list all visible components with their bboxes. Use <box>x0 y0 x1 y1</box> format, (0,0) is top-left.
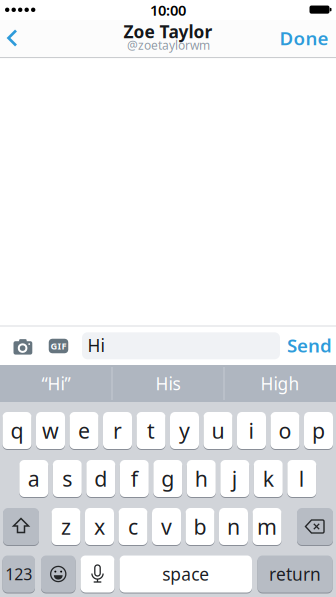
staticText: p <box>312 416 325 445</box>
staticText: 123 <box>5 563 32 585</box>
staticText: t <box>147 416 155 445</box>
staticText: Zoe Taylor <box>123 20 212 43</box>
button[interactable] <box>8 335 38 359</box>
staticText: n <box>227 512 240 541</box>
staticText: return <box>269 562 321 585</box>
button[interactable]: u <box>203 412 232 449</box>
button[interactable]: t <box>136 412 165 449</box>
button[interactable]: j <box>220 460 249 497</box>
button[interactable]: y <box>170 412 199 449</box>
button[interactable]: k <box>254 460 283 497</box>
button[interactable]: a <box>19 460 48 497</box>
staticText: 10:00 <box>150 0 186 20</box>
staticText: z <box>61 512 71 541</box>
button[interactable] <box>82 332 280 359</box>
button[interactable]: Done <box>276 20 332 56</box>
staticText: e <box>78 416 90 445</box>
staticText: GIF <box>50 340 66 352</box>
button[interactable]: m <box>252 508 281 545</box>
staticText: “Hi” <box>41 372 70 395</box>
staticText: Done <box>279 26 328 50</box>
staticText: b <box>193 512 206 541</box>
button[interactable]: r <box>103 412 132 449</box>
button[interactable] <box>0 20 30 56</box>
staticText: a <box>28 464 40 493</box>
button[interactable]: Send <box>283 330 335 360</box>
staticText: High <box>260 372 299 395</box>
staticText: Hi <box>87 334 104 357</box>
button[interactable] <box>41 555 75 592</box>
staticText: w <box>42 416 59 445</box>
button[interactable]: e <box>69 412 98 449</box>
button[interactable]: i <box>237 412 266 449</box>
button[interactable]: space <box>119 555 252 592</box>
button[interactable]: g <box>153 460 182 497</box>
staticText: o <box>278 416 291 445</box>
button[interactable]: d <box>86 460 115 497</box>
staticText: g <box>161 464 174 493</box>
staticText: x <box>94 512 105 541</box>
staticText: v <box>161 512 172 541</box>
staticText: Send <box>287 333 332 358</box>
button[interactable]: GIF <box>49 339 68 353</box>
staticText: d <box>94 464 107 493</box>
button[interactable]: z <box>51 508 80 545</box>
staticText: m <box>257 512 277 541</box>
button[interactable]: f <box>120 460 149 497</box>
button[interactable]: l <box>287 460 316 497</box>
staticText: j <box>232 464 238 493</box>
button[interactable]: “Hi” <box>1 365 111 402</box>
button[interactable] <box>80 555 114 592</box>
staticText: s <box>62 464 72 493</box>
staticText: i <box>248 416 254 445</box>
staticText: q <box>10 416 23 445</box>
staticText: c <box>128 512 138 541</box>
staticText: His <box>155 372 180 395</box>
button[interactable]: x <box>85 508 114 545</box>
staticText: h <box>195 464 208 493</box>
button[interactable]: b <box>185 508 214 545</box>
staticText: r <box>113 416 122 445</box>
button[interactable]: v <box>152 508 181 545</box>
button[interactable]: 123 <box>2 555 35 592</box>
button[interactable]: His <box>113 365 223 402</box>
staticText: k <box>263 464 274 493</box>
staticText: @zoetaylorwm <box>127 37 210 53</box>
button[interactable]: q <box>2 412 31 449</box>
button[interactable]: h <box>187 460 216 497</box>
button[interactable]: s <box>53 460 82 497</box>
button[interactable]: High <box>225 365 335 402</box>
staticText: y <box>179 416 190 445</box>
button[interactable]: n <box>219 508 248 545</box>
button[interactable]: p <box>304 412 333 449</box>
button[interactable]: return <box>257 555 332 592</box>
button[interactable]: w <box>36 412 65 449</box>
staticText: space <box>162 562 209 585</box>
button[interactable] <box>297 508 333 545</box>
button[interactable] <box>3 508 39 545</box>
staticText: u <box>211 416 224 445</box>
button[interactable]: c <box>118 508 147 545</box>
button[interactable]: o <box>270 412 299 449</box>
staticText: f <box>131 464 138 493</box>
staticText: l <box>299 464 305 493</box>
